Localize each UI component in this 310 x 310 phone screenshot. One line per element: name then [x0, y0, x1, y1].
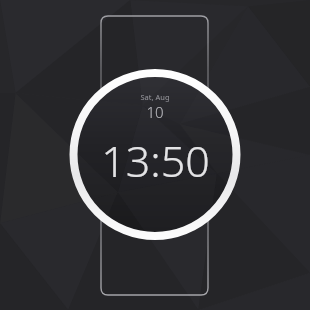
staticText: 10: [146, 102, 164, 122]
staticText: Sat, Aug: [140, 92, 170, 102]
staticText: 13:50: [101, 131, 210, 190]
button[interactable]: Watch face showing 13:50, Saturday Augus…: [0, 0, 310, 310]
